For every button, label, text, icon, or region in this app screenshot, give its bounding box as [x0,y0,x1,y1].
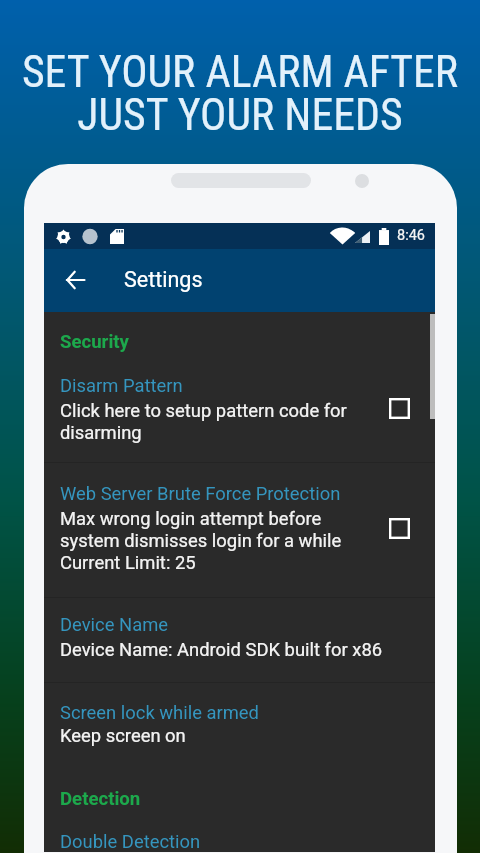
button[interactable]: Screen lock while armed [60,702,259,724]
button[interactable]: Keep screen on [60,725,186,747]
staticText: Max wrong login attempt before system di… [60,508,342,574]
button[interactable]: Device Name: Android SDK built for x86 [60,639,383,661]
staticText: Web Server Brute Force Protection [60,483,341,505]
button[interactable]: Security [60,331,129,353]
button[interactable]: Disarm Pattern [60,375,183,397]
staticText: Security [60,331,129,353]
staticText: Device Name: Android SDK built for x86 [60,639,383,661]
button[interactable]: Double Detection [60,831,201,853]
button[interactable]: Click here to setup pattern code for dis… [60,400,347,444]
button[interactable]: Max wrong login attempt before system di… [60,508,342,574]
staticText: SET YOUR ALARM AFTER [0,46,480,97]
staticText: 8:46 [397,227,425,244]
staticText: JUST YOUR NEEDS [0,89,480,140]
staticText: Device Name [60,614,169,636]
staticText: Disarm Pattern [60,375,183,397]
staticText: Settings [124,267,203,292]
button[interactable]: Device Name [60,614,169,636]
staticText: Screen lock while armed [60,702,259,724]
staticText: Click here to setup pattern code for dis… [60,400,347,444]
staticText: Keep screen on [60,725,186,747]
button[interactable]: Toggle [389,398,410,419]
staticText: Double Detection [60,831,201,853]
staticText: Detection [60,788,141,810]
button[interactable]: Toggle [389,518,410,539]
button[interactable]: Web Server Brute Force Protection [60,483,341,505]
button[interactable]: Detection [60,788,141,810]
button[interactable]: Back [53,258,97,302]
